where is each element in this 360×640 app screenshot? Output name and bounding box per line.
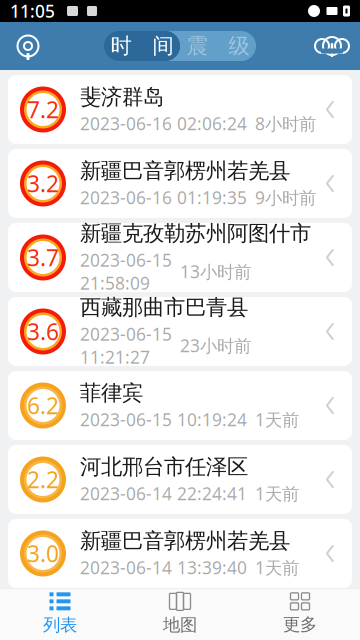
- staticText: 8小时前: [255, 112, 316, 135]
- button[interactable]: 更多: [240, 588, 360, 640]
- staticText: 菲律宾: [80, 380, 143, 406]
- staticText: 新疆克孜勒苏州阿图什市: [80, 220, 311, 247]
- staticText: 新疆巴音郭楞州若羌县: [80, 158, 290, 184]
- staticText: 新疆巴音郭楞州若羌县: [80, 528, 290, 554]
- staticText: 地图: [163, 614, 197, 636]
- staticText: 2.2: [27, 464, 59, 494]
- staticText: 9小时前: [255, 186, 316, 209]
- staticText: 2023-06-15 21:58:09: [80, 249, 172, 295]
- button[interactable]: 7.2: [0, 75, 360, 144]
- staticText: 2023-06-14 13:39:40: [80, 556, 247, 579]
- button[interactable]: 时 间: [104, 31, 180, 61]
- staticText: 更多: [283, 614, 317, 635]
- staticText: 2023-06-14 22:24:41: [80, 482, 247, 505]
- staticText: 列表: [43, 614, 77, 636]
- staticText: 2023-06-15 11:21:27: [80, 323, 172, 369]
- staticText: 时 间: [110, 33, 173, 59]
- staticText: 6.2: [27, 390, 59, 420]
- staticText: 3.2: [27, 168, 59, 198]
- button[interactable]: 3.6: [0, 297, 360, 366]
- staticText: 时 间: [110, 33, 173, 59]
- button[interactable]: 3.2: [0, 149, 360, 218]
- button[interactable]: 2.2: [0, 445, 360, 514]
- staticText: 2023-06-16 02:06:24: [80, 112, 247, 135]
- staticText: 斐济群岛: [80, 84, 164, 110]
- staticText: 1天前: [255, 556, 299, 579]
- button[interactable]: 列表: [0, 588, 120, 640]
- button[interactable]: 当前位置: [6, 22, 50, 70]
- staticText: 河北邢台市任泽区: [80, 454, 248, 480]
- button[interactable]: 震 级: [180, 31, 256, 61]
- staticText: 西藏那曲市巴青县: [80, 294, 248, 321]
- staticText: 3.0: [27, 538, 59, 568]
- staticText: 震 级: [186, 33, 249, 59]
- button[interactable]: 3.0: [0, 519, 360, 588]
- staticText: 2023-06-16 01:19:35: [80, 186, 247, 209]
- staticText: 3.7: [27, 242, 59, 272]
- staticText: 11:05: [10, 0, 55, 22]
- staticText: 1天前: [255, 482, 299, 505]
- button[interactable]: 3.7: [0, 223, 360, 292]
- staticText: 13小时前: [180, 260, 251, 283]
- staticText: 23小时前: [180, 334, 251, 357]
- staticText: 2023-06-15 10:19:24: [80, 408, 247, 431]
- button[interactable]: 6.2: [0, 371, 360, 440]
- button[interactable]: 地图: [120, 588, 240, 640]
- staticText: 7.2: [27, 94, 59, 124]
- staticText: 1天前: [255, 408, 299, 431]
- button[interactable]: 上传: [310, 22, 354, 70]
- staticText: 3.6: [27, 316, 59, 346]
